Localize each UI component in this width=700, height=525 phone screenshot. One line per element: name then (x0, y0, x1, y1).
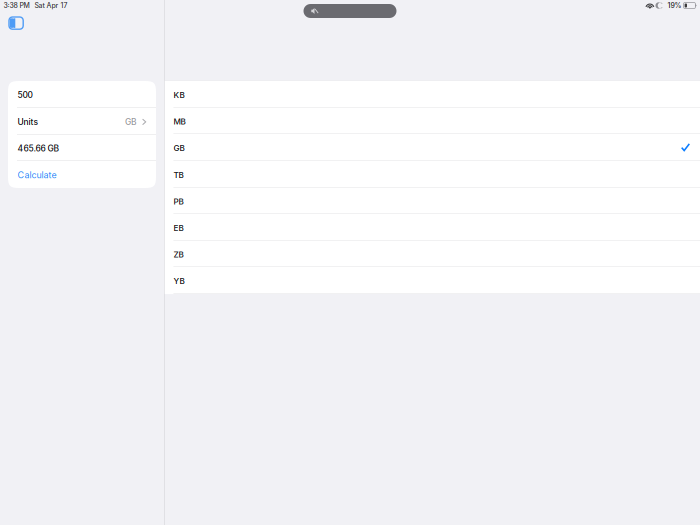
staticText: MB (173, 117, 185, 126)
staticText: KB (173, 90, 184, 100)
button[interactable]: 500 (8, 81, 156, 108)
staticText: TB (173, 170, 183, 180)
staticText: PB (173, 197, 183, 206)
staticText: ZB (173, 250, 183, 259)
staticText: GB (125, 117, 137, 127)
staticText: Calculate (17, 169, 56, 180)
staticText: EB (173, 223, 183, 233)
button[interactable]: MB (165, 108, 700, 134)
staticText: 19% (667, 1, 681, 10)
button[interactable]: YB (165, 267, 700, 294)
staticText: YB (173, 276, 184, 286)
button[interactable]: KB (165, 81, 700, 108)
staticText: 3:38 PM (3, 1, 29, 10)
button[interactable]: ZB (165, 241, 700, 267)
button[interactable]: 465.66 GB (8, 135, 156, 161)
staticText: 465.66 GB (17, 143, 59, 153)
button[interactable]: Toggle Sidebar (0, 17, 32, 29)
button[interactable]: TB (165, 161, 700, 188)
staticText: Sat Apr 17 (34, 1, 67, 10)
staticText: Units (17, 117, 38, 127)
button[interactable]: Calculate (8, 161, 156, 188)
button[interactable]: EB (165, 214, 700, 241)
staticText: 500 (17, 90, 32, 100)
button[interactable]: GB (165, 134, 700, 161)
button[interactable]: Units (8, 108, 156, 135)
button[interactable]: PB (165, 188, 700, 214)
staticText: GB (173, 143, 184, 153)
